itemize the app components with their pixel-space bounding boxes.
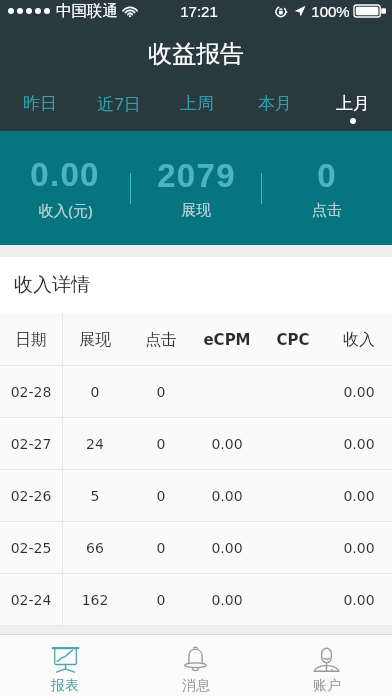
staticText: 上月 (336, 93, 370, 114)
button[interactable]: 0 (262, 157, 392, 220)
other: 报表 (52, 646, 79, 673)
staticText: 日期 (0, 330, 62, 350)
button[interactable]: 上月 (314, 86, 392, 131)
button[interactable]: 报表 (0, 635, 130, 696)
staticText: 0.00 (326, 592, 392, 608)
staticText: 0 (317, 157, 337, 194)
staticText: 02-24 (0, 592, 62, 608)
staticText: 0.00 (194, 540, 260, 556)
other: Rotation lock (275, 5, 289, 18)
staticText: 点击 (128, 330, 194, 350)
staticText: 0.00 (194, 436, 260, 452)
button[interactable]: 02-28 (0, 366, 392, 418)
staticText: 0.00 (194, 592, 260, 608)
other: Wi-Fi (122, 6, 138, 17)
other: 账户 (313, 646, 340, 673)
other: Battery (354, 5, 386, 17)
staticText: 收入(元) (38, 200, 93, 220)
staticText: 账户 (313, 677, 341, 695)
button[interactable]: 02-24 (0, 574, 392, 626)
button[interactable]: 02-26 (0, 470, 392, 522)
staticText: 0.00 (326, 540, 392, 556)
button[interactable]: 昨日 (0, 86, 79, 131)
button[interactable]: 本月 (236, 86, 314, 131)
staticText: 0.00 (326, 436, 392, 452)
staticText: 0.00 (30, 156, 100, 193)
staticText: 收入 (326, 330, 392, 350)
staticText: 02-26 (0, 488, 62, 504)
button[interactable]: 收入详情 (0, 257, 392, 313)
staticText: 消息 (182, 677, 210, 695)
staticText: 上周 (180, 93, 214, 114)
staticText: 02-27 (0, 436, 62, 452)
staticText: 0 (128, 592, 194, 608)
button[interactable]: 02-27 (0, 418, 392, 470)
staticText: 0.00 (326, 488, 392, 504)
staticText: 0.00 (326, 384, 392, 400)
staticText: 展现 (181, 201, 211, 220)
staticText: 收益报告 (148, 39, 244, 69)
staticText: 0 (128, 540, 194, 556)
staticText: 昨日 (23, 93, 57, 114)
staticText: 0.00 (194, 488, 260, 504)
button[interactable]: 2079 (131, 157, 261, 220)
staticText: 点击 (312, 201, 342, 220)
other: 消息 (182, 646, 209, 673)
staticText: 0 (128, 384, 194, 400)
staticText: 17:21 (180, 3, 218, 20)
staticText: 中国联通 (56, 1, 118, 21)
staticText: CPC (260, 331, 326, 348)
button[interactable]: 近7日 (79, 86, 158, 131)
staticText: 162 (62, 592, 128, 608)
staticText: 0 (128, 436, 194, 452)
staticText: 66 (62, 540, 128, 556)
staticText: 近7日 (97, 92, 141, 115)
staticText: 02-28 (0, 384, 62, 400)
staticText: 0 (128, 488, 194, 504)
button[interactable]: 0.00 (0, 156, 130, 220)
staticText: 2079 (157, 157, 236, 194)
staticText: 100% (311, 3, 350, 20)
button[interactable]: 账户 (261, 635, 392, 696)
staticText: 0 (62, 384, 128, 400)
staticText: 5 (62, 488, 128, 504)
staticText: 报表 (51, 677, 79, 695)
staticText: 本月 (258, 93, 292, 114)
staticText: 02-25 (0, 540, 62, 556)
staticText: eCPM (194, 331, 260, 348)
staticText: 收入详情 (14, 273, 90, 297)
staticText: 展现 (62, 330, 128, 350)
button[interactable]: 上周 (158, 86, 236, 131)
button[interactable]: 消息 (130, 635, 261, 696)
button[interactable]: 02-25 (0, 522, 392, 574)
staticText: 24 (62, 436, 128, 452)
